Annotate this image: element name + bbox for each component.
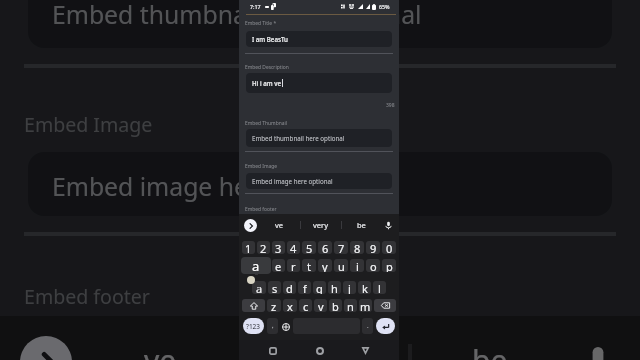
staticText: ?123 xyxy=(246,322,261,331)
button[interactable]: y xyxy=(318,259,332,272)
button[interactable]: Embed image here optional xyxy=(246,173,392,189)
button[interactable]: e xyxy=(272,259,285,272)
button[interactable]: j xyxy=(343,281,356,294)
button[interactable]: 5 xyxy=(302,241,316,254)
staticText: very xyxy=(296,340,356,360)
button[interactable]: 2 xyxy=(257,241,270,254)
staticText: z xyxy=(271,299,277,312)
button[interactable]: Expand suggestions xyxy=(20,336,72,360)
button[interactable]: Enter xyxy=(376,318,395,334)
button[interactable]: c xyxy=(299,299,312,312)
staticText: o xyxy=(370,259,377,272)
staticText: 3 xyxy=(275,241,282,254)
staticText: e xyxy=(275,259,282,272)
staticText: a xyxy=(257,284,261,292)
button[interactable]: Back xyxy=(358,343,373,358)
staticText: Embed image here optional xyxy=(52,168,376,200)
button[interactable]: m xyxy=(359,299,372,312)
button[interactable]: f xyxy=(298,281,311,294)
button[interactable]: Home xyxy=(312,343,327,358)
staticText: v xyxy=(318,299,324,312)
staticText: Embed footer xyxy=(245,206,277,213)
button[interactable]: ve xyxy=(80,316,244,360)
button[interactable]: ve xyxy=(259,214,300,236)
button[interactable]: Recents xyxy=(265,343,280,358)
staticText: j xyxy=(348,281,351,294)
button[interactable]: 1 xyxy=(242,241,255,254)
staticText: c xyxy=(303,299,309,312)
staticText: . xyxy=(367,322,369,330)
staticText: 0 xyxy=(386,241,393,254)
button[interactable]: 0 xyxy=(382,241,396,254)
staticText: p xyxy=(386,259,393,272)
staticText: 65% xyxy=(379,3,390,10)
button[interactable]: x xyxy=(283,299,297,312)
button[interactable]: q xyxy=(242,259,255,272)
button[interactable]: Hi i am ve xyxy=(246,73,392,93)
staticText: b xyxy=(332,299,339,312)
button[interactable]: s xyxy=(268,281,281,294)
button[interactable]: very xyxy=(300,214,341,236)
button[interactable]: Backspace xyxy=(374,299,396,312)
button[interactable]: d xyxy=(283,281,296,294)
staticText: 8 xyxy=(354,241,361,254)
button[interactable]: h xyxy=(328,281,341,294)
button[interactable]: w xyxy=(257,259,270,272)
staticText: Embed footer xyxy=(24,284,152,312)
staticText: r xyxy=(291,259,296,272)
button[interactable]: ?123 xyxy=(243,318,264,334)
button[interactable]: v xyxy=(314,299,327,312)
button[interactable]: o xyxy=(366,259,380,272)
button[interactable]: Embed thumbnail here optional xyxy=(246,129,392,147)
staticText: l xyxy=(378,281,381,294)
staticText: u xyxy=(338,259,345,272)
staticText: very xyxy=(313,220,328,230)
button[interactable]: Shift xyxy=(242,299,265,312)
button[interactable]: Voice input xyxy=(576,340,620,360)
button[interactable]: a xyxy=(252,281,266,294)
button[interactable]: i xyxy=(350,259,364,272)
button[interactable]: 7 xyxy=(334,241,348,254)
button[interactable]: Expand suggestions xyxy=(244,219,257,232)
staticText: ve xyxy=(144,340,180,360)
button[interactable]: very xyxy=(244,316,408,360)
button[interactable]: g xyxy=(313,281,326,294)
staticText: Embed Image xyxy=(24,112,156,140)
staticText: Embed Image xyxy=(245,163,278,170)
staticText: 5 xyxy=(306,241,313,254)
button[interactable]: p xyxy=(382,259,396,272)
button[interactable]: Embed image here optional xyxy=(28,152,612,216)
button[interactable]: be xyxy=(341,214,382,236)
button[interactable]: I am BeasTu xyxy=(246,31,392,47)
button[interactable]: 3 xyxy=(272,241,285,254)
button[interactable]: k xyxy=(358,281,371,294)
button[interactable]: Voice input xyxy=(383,220,394,231)
button[interactable]: n xyxy=(344,299,357,312)
button[interactable]: u xyxy=(334,259,348,272)
button[interactable]: . xyxy=(362,318,373,334)
button[interactable]: l xyxy=(373,281,386,294)
staticText: a xyxy=(256,281,263,294)
staticText: Embed Thumbnail xyxy=(245,120,287,127)
button[interactable]: 9 xyxy=(366,241,380,254)
button[interactable]: , xyxy=(267,318,278,334)
button[interactable]: 4 xyxy=(287,241,300,254)
staticText: 6 xyxy=(322,241,329,254)
button[interactable]: Emoji xyxy=(280,321,291,332)
button[interactable]: be xyxy=(408,316,572,360)
button[interactable]: 8 xyxy=(350,241,364,254)
staticText: Hi i am ve xyxy=(252,79,282,87)
button[interactable]: z xyxy=(267,299,281,312)
staticText: Embed thumbnail here optional xyxy=(252,134,345,142)
button[interactable]: Embed thumbnail here optional xyxy=(28,0,612,48)
button[interactable]: r xyxy=(287,259,300,272)
button[interactable]: t xyxy=(302,259,316,272)
button[interactable]: b xyxy=(329,299,342,312)
staticText: 4 xyxy=(290,241,297,254)
staticText: Embed image here optional xyxy=(252,177,333,185)
button[interactable]: 6 xyxy=(318,241,332,254)
staticText: i xyxy=(356,259,359,272)
